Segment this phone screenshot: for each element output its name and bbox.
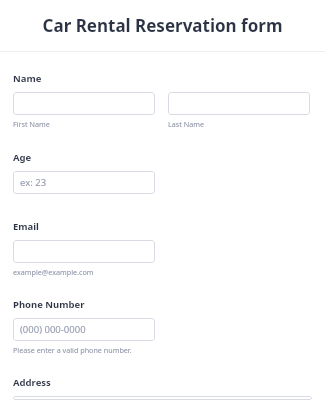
button[interactable]: Last Name — [168, 92, 310, 115]
staticText: Name — [13, 72, 42, 85]
button[interactable]: Email — [13, 240, 155, 263]
staticText: Phone Number — [13, 298, 85, 311]
staticText: Email — [13, 220, 39, 233]
staticText: ex: 23 — [20, 176, 47, 189]
staticText: First Name — [13, 119, 50, 129]
staticText: Age — [13, 151, 32, 164]
staticText: example@example.com — [13, 267, 94, 277]
button[interactable]: Street Address — [13, 396, 312, 400]
staticText: (000) 000-0000 — [20, 323, 86, 336]
staticText: Address — [13, 376, 51, 389]
button[interactable]: Age — [13, 171, 155, 194]
button[interactable]: First Name — [13, 92, 155, 115]
button[interactable]: Phone Number — [13, 318, 155, 341]
staticText: Please enter a valid phone number. — [13, 345, 132, 355]
staticText: Car Rental Reservation form — [0, 14, 325, 37]
staticText: Last Name — [168, 119, 204, 129]
